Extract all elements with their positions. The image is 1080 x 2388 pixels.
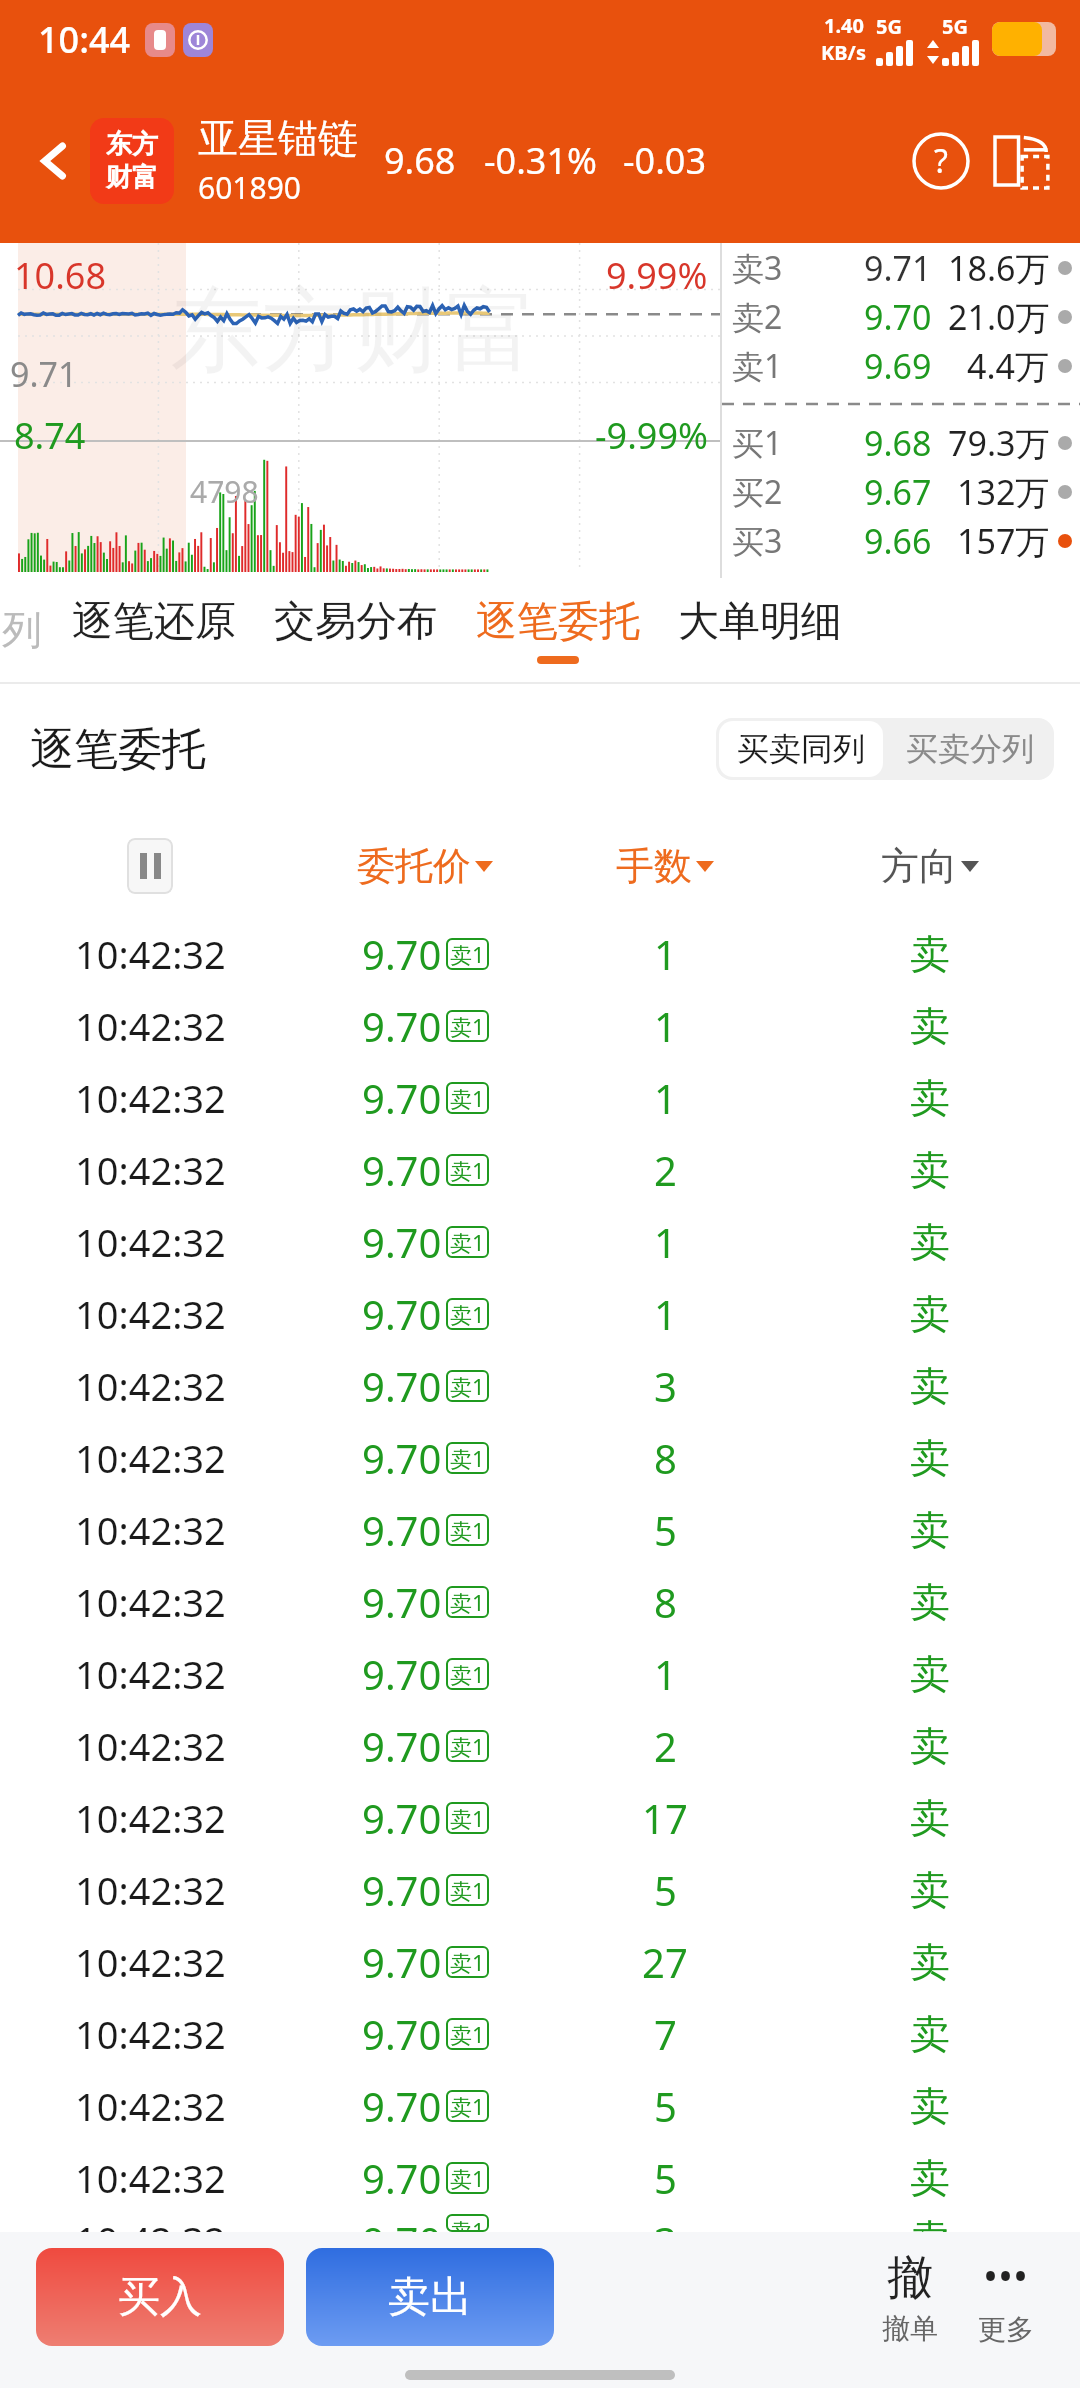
staticText: 卖: [910, 929, 950, 979]
staticText: 10:42:32: [75, 1000, 226, 1052]
staticText: 9.71: [10, 351, 78, 397]
staticText: 10:42:32: [75, 928, 226, 980]
staticText: 8: [654, 1431, 677, 1485]
staticText: 10:42:32: [75, 1648, 226, 1700]
staticText: 10:42:32: [75, 1576, 226, 1628]
staticText: 9.70: [362, 2151, 442, 2205]
staticText: 卖: [910, 1433, 950, 1483]
staticText: 9.70: [362, 2007, 442, 2061]
staticText: 9.67: [864, 469, 932, 515]
button[interactable]: 卖1: [722, 341, 1080, 390]
button[interactable]: 10:42:32: [0, 1998, 1080, 2070]
button[interactable]: Help: [906, 126, 976, 196]
staticText: 9.66: [864, 518, 932, 564]
button[interactable]: 交易分布: [274, 592, 438, 668]
staticText: 卖1: [450, 1371, 485, 1401]
button[interactable]: Pause: [127, 838, 173, 894]
button[interactable]: 卖2: [722, 292, 1080, 341]
button[interactable]: 10:42:32: [0, 1638, 1080, 1710]
staticText: 卖1: [450, 2215, 485, 2231]
staticText: 卖: [910, 1145, 950, 1195]
staticText: 10:42:32: [75, 2008, 226, 2060]
button[interactable]: 10:42:32: [0, 1926, 1080, 1998]
button[interactable]: 逐笔委托: [476, 592, 640, 668]
button[interactable]: 10:42:32: [0, 990, 1080, 1062]
button[interactable]: 10:42:32: [0, 2214, 1080, 2232]
staticText: 列: [2, 605, 42, 655]
staticText: 5: [654, 1503, 677, 1557]
button[interactable]: 10:42:32: [0, 1422, 1080, 1494]
button[interactable]: 手数: [550, 814, 780, 918]
staticText: 逐笔委托: [476, 596, 640, 648]
staticText: 10:42:32: [75, 1936, 226, 1988]
staticText: 9.70: [362, 2079, 442, 2133]
button[interactable]: 买3: [722, 516, 1080, 565]
staticText: 9.70: [362, 1503, 442, 1557]
staticText: 9.70: [362, 1143, 442, 1197]
staticText: 8: [654, 1575, 677, 1629]
button[interactable]: 10:42:32: [0, 2070, 1080, 2142]
staticText: 卖: [910, 1361, 950, 1411]
button[interactable]: •••: [978, 2248, 1034, 2347]
button[interactable]: 买入: [36, 2248, 284, 2346]
staticText: 5: [654, 2079, 677, 2133]
button[interactable]: Back: [24, 130, 86, 192]
button[interactable]: 10:42:32: [0, 1350, 1080, 1422]
staticText: 东方财富: [170, 273, 538, 389]
button[interactable]: 10:42:32: [0, 1782, 1080, 1854]
staticText: -0.03: [623, 136, 707, 185]
button[interactable]: 卖3: [722, 243, 1080, 292]
button[interactable]: 卖出: [306, 2248, 554, 2346]
button[interactable]: 大单明细: [678, 592, 842, 668]
staticText: 卖: [910, 1649, 950, 1699]
button[interactable]: 买1: [722, 418, 1080, 467]
button[interactable]: 东方: [90, 118, 174, 204]
button[interactable]: Landscape mode: [986, 126, 1056, 196]
staticText: 更多: [978, 2312, 1034, 2347]
staticText: 9.70: [362, 1287, 442, 1341]
button[interactable]: 10:42:32: [0, 1062, 1080, 1134]
staticText: 4798: [190, 471, 259, 512]
button[interactable]: 10:42:32: [0, 2142, 1080, 2214]
staticText: 卖: [910, 1937, 950, 1987]
staticText: 买卖同列: [737, 729, 865, 769]
staticText: 卖: [910, 1289, 950, 1339]
staticText: 79.3万: [948, 420, 1050, 466]
button[interactable]: 10:42:32: [0, 1494, 1080, 1566]
staticText: 1: [654, 927, 677, 981]
button[interactable]: 10:42:32: [0, 1854, 1080, 1926]
staticText: 10:42:32: [75, 1864, 226, 1916]
button[interactable]: 买卖同列: [719, 721, 883, 777]
staticText: 买3: [732, 519, 783, 563]
button[interactable]: 逐笔还原: [72, 592, 236, 668]
button[interactable]: 买卖分列: [886, 718, 1054, 780]
button[interactable]: 10:42:32: [0, 1278, 1080, 1350]
staticText: 撤: [887, 2249, 933, 2307]
staticText: 157万: [957, 518, 1050, 564]
staticText: 132万: [957, 469, 1050, 515]
staticText: 卖: [910, 2214, 950, 2232]
button[interactable]: 方向: [780, 814, 1080, 918]
button[interactable]: 买2: [722, 467, 1080, 516]
staticText: ?: [934, 139, 948, 183]
button[interactable]: 10:42:32: [0, 1206, 1080, 1278]
button[interactable]: 委托价: [300, 814, 550, 918]
staticText: 10:42:32: [75, 1792, 226, 1844]
staticText: 卖1: [450, 1083, 485, 1113]
staticText: 10:42:32: [75, 2214, 226, 2232]
button[interactable]: 10:42:32: [0, 1134, 1080, 1206]
staticText: 601890: [198, 167, 301, 208]
staticText: 逐笔委托: [30, 722, 206, 777]
button[interactable]: 10:42:32: [0, 1566, 1080, 1638]
staticText: 1: [654, 1647, 677, 1701]
button[interactable]: 10:42:32: [0, 1710, 1080, 1782]
staticText: 10:42:32: [75, 1216, 226, 1268]
staticText: 2: [654, 1719, 677, 1773]
staticText: 10:42:32: [75, 1720, 226, 1772]
button[interactable]: 10:42:32: [0, 918, 1080, 990]
staticText: 亚星锚链: [198, 113, 358, 163]
staticText: 卖1: [450, 1875, 485, 1905]
staticText: 3: [654, 2214, 677, 2232]
staticText: 9.70: [362, 1431, 442, 1485]
button[interactable]: 撤: [882, 2249, 938, 2346]
